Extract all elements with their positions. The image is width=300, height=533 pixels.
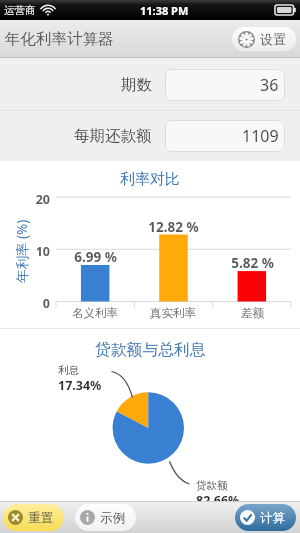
staticText: 0 <box>42 295 50 312</box>
staticText: 17.34% <box>58 377 102 394</box>
button[interactable]: 36 <box>165 69 285 101</box>
staticText: 36 <box>260 74 279 96</box>
button[interactable]: 计算 <box>235 504 296 531</box>
staticText: 贷款额 <box>196 479 228 492</box>
staticText: 计算 <box>260 510 285 526</box>
staticText: 10 <box>35 243 50 260</box>
button[interactable]: 示例 <box>75 504 136 531</box>
staticText: 6.99 % <box>74 248 117 266</box>
staticText: 名义利率 <box>72 306 118 320</box>
staticText: 重置 <box>28 510 53 526</box>
staticText: 11:38 PM <box>140 3 189 18</box>
staticText: 年化利率计算器 <box>5 29 114 49</box>
staticText: 82.66% <box>196 492 240 509</box>
staticText: 20 <box>35 191 50 208</box>
button[interactable]: 设置 <box>232 27 296 51</box>
button[interactable]: 1109 <box>165 120 285 152</box>
staticText: 5.82 % <box>231 254 274 272</box>
staticText: 12.82 % <box>148 218 199 236</box>
staticText: 期数 <box>121 75 152 95</box>
staticText: 运营商 <box>4 4 36 17</box>
staticText: 利息 <box>58 364 79 377</box>
staticText: 贷款额与总利息 <box>95 340 206 360</box>
button[interactable]: 重置 <box>3 504 64 531</box>
staticText: 每期还款额 <box>74 126 152 146</box>
staticText: 差额 <box>241 306 264 320</box>
staticText: 利率对比 <box>120 170 180 189</box>
staticText: 示例 <box>100 510 125 526</box>
staticText: 设置 <box>260 31 286 47</box>
staticText: 年利率 (%) <box>13 219 31 283</box>
staticText: 1109 <box>242 125 279 147</box>
staticText: 真实利率 <box>150 306 196 320</box>
